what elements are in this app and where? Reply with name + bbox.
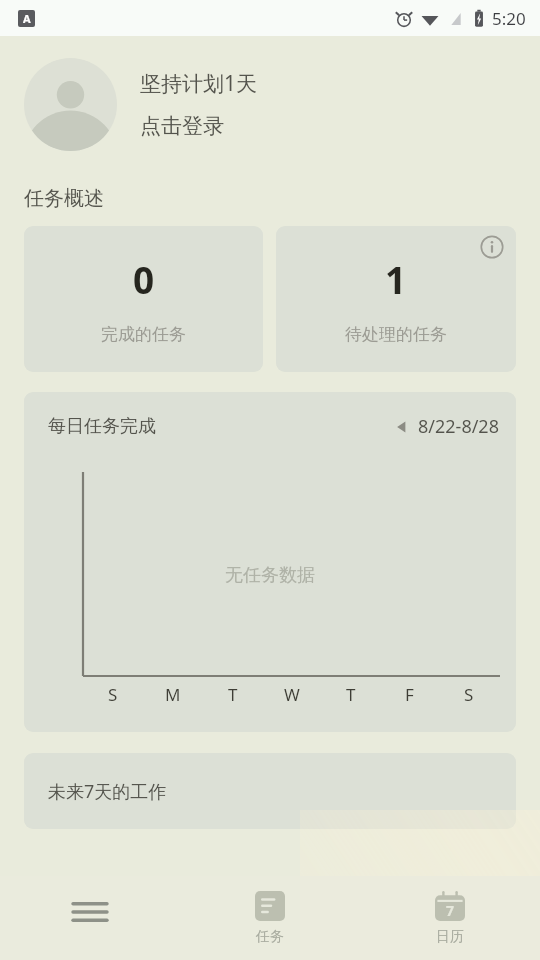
button[interactable]: Menu xyxy=(0,876,180,960)
staticText: T xyxy=(346,683,356,706)
staticText: 坚持计划1天 xyxy=(140,69,258,98)
staticText: M xyxy=(165,683,181,706)
staticText: 任务 xyxy=(256,928,284,946)
button[interactable]: 0 xyxy=(24,226,263,372)
staticText: 完成的任务 xyxy=(101,324,186,345)
button[interactable]: Info xyxy=(479,234,505,260)
staticText: 8/22-8/28 xyxy=(418,414,499,439)
staticText: 点击登录 xyxy=(140,113,224,139)
staticText: 每日任务完成 xyxy=(48,415,156,438)
button[interactable]: 7 xyxy=(360,876,540,960)
staticText: 2 xyxy=(73,624,82,625)
staticText: 日历 xyxy=(436,928,464,946)
staticText: 任务概述 xyxy=(24,186,104,211)
staticText: 6 xyxy=(73,523,82,524)
other: Previous week xyxy=(396,419,407,435)
button[interactable]: 1 xyxy=(276,226,516,372)
staticText: S xyxy=(108,683,118,706)
staticText: F xyxy=(405,683,414,706)
staticText: 0 xyxy=(73,675,82,676)
staticText: W xyxy=(284,683,300,706)
staticText: 待处理的任务 xyxy=(345,324,447,345)
staticText: 7 xyxy=(446,901,455,920)
button[interactable]: 未来7天的工作 xyxy=(24,753,516,829)
staticText: 5:20 xyxy=(492,7,526,30)
button[interactable]: 坚持计划1天 xyxy=(0,36,540,172)
staticText: 未来7天的工作 xyxy=(48,779,167,804)
button[interactable]: 任务 xyxy=(180,876,360,960)
staticText: A xyxy=(23,11,31,26)
staticText: 1 xyxy=(385,254,407,304)
staticText: 0 xyxy=(133,254,155,304)
staticText: S xyxy=(464,683,474,706)
staticText: 8 xyxy=(73,472,82,473)
staticText: 无任务数据 xyxy=(225,564,315,587)
staticText: T xyxy=(228,683,238,706)
button[interactable]: Previous week xyxy=(396,414,499,439)
staticText: 4 xyxy=(73,574,82,575)
